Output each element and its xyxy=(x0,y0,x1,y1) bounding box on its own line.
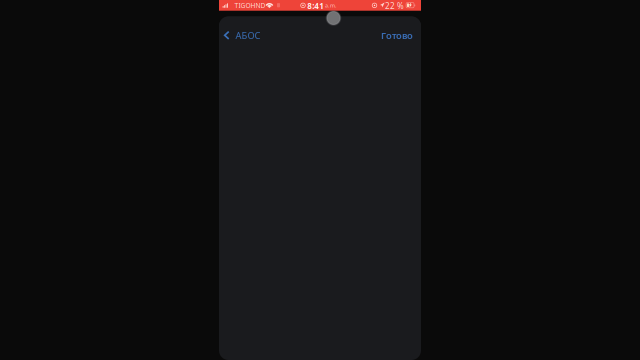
staticText: 8:41 xyxy=(307,1,324,11)
staticText: 22 % xyxy=(385,0,404,11)
staticText: Готово xyxy=(381,29,413,41)
staticText: a. m. xyxy=(325,2,336,9)
staticText: TIGOHND xyxy=(234,1,265,10)
button[interactable]: Готово xyxy=(371,23,422,47)
staticText: АБОС xyxy=(235,29,260,41)
button[interactable]: АБОС xyxy=(219,23,268,47)
